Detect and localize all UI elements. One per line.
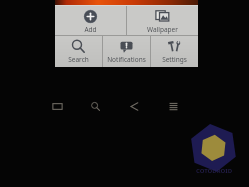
button[interactable]: Menu (164, 97, 183, 116)
button[interactable]: Recent apps (48, 97, 67, 116)
button[interactable]: Notifications (103, 36, 150, 67)
button[interactable]: Back (125, 97, 144, 116)
staticText: COTODROID (186, 167, 242, 175)
button[interactable]: Settings (151, 36, 198, 67)
staticText: Wallpaper (147, 25, 178, 34)
staticText: Add (84, 25, 97, 34)
button[interactable]: Search (86, 97, 105, 116)
button[interactable]: Search (55, 36, 102, 67)
staticText: Notifications (107, 55, 146, 64)
staticText: Search (68, 55, 89, 64)
button[interactable]: Wallpaper (127, 6, 198, 35)
staticText: Settings (162, 55, 187, 64)
button[interactable]: Add (55, 6, 126, 35)
